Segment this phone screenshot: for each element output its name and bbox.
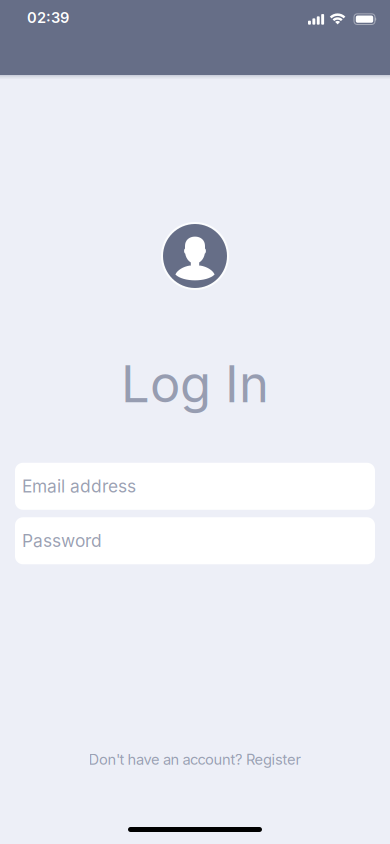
button[interactable]: Register (246, 751, 301, 768)
button[interactable]: Password (15, 517, 375, 564)
staticText: Register (246, 751, 301, 768)
staticText: 02:39 (27, 9, 69, 26)
staticText: Log In (121, 354, 269, 414)
staticText: Email address (22, 476, 136, 496)
button[interactable]: Email address (15, 463, 375, 510)
staticText: Don't have an account? (88, 751, 242, 768)
staticText: Password (22, 530, 102, 551)
